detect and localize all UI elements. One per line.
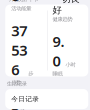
staticText: 今日记录 [11, 95, 39, 103]
staticText: 健康趋势 [52, 16, 72, 22]
staticText: 一切良好 [52, 0, 79, 16]
staticText: 步 [28, 70, 33, 77]
staticText: 250 [11, 0, 27, 5]
staticText: 千卡 [28, 0, 38, 3]
staticText: 9.0 [52, 31, 64, 70]
staticText: 生活记录 [7, 80, 27, 87]
staticText: 睡眠 [52, 70, 62, 77]
staticText: 次 [20, 105, 25, 110]
staticText: 步数 [11, 79, 21, 86]
staticText: 3 [11, 95, 19, 110]
staticText: 今日数据 [7, 0, 27, 2]
staticText: 活动能量 [11, 5, 31, 12]
staticText: 37536 [11, 21, 27, 79]
staticText: 小时 [65, 61, 75, 68]
